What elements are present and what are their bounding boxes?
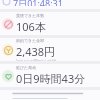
other: Life extended xyxy=(2,70,14,82)
staticText: 0日9時間43分 xyxy=(16,71,86,86)
staticText: 節約できた金額 xyxy=(16,38,45,43)
other: Cigarettes avoided xyxy=(2,18,14,30)
staticText: 延びた寿命 xyxy=(16,65,37,70)
staticText: 2,438円 xyxy=(16,44,56,59)
button[interactable]: Life extended xyxy=(0,64,100,87)
staticText: 7日01:48:31 xyxy=(13,0,63,6)
other: Money saved xyxy=(2,44,14,56)
staticText: 1日あたり約350円として計算 xyxy=(16,59,57,61)
button[interactable]: Money saved xyxy=(0,38,100,61)
button[interactable]: 7日01:48:31 xyxy=(0,0,100,9)
button[interactable]: Cigarettes avoided xyxy=(0,12,100,35)
staticText: 106本 xyxy=(16,19,46,34)
staticText: 禁煙できた本数 xyxy=(16,13,45,18)
button[interactable] xyxy=(0,90,100,100)
